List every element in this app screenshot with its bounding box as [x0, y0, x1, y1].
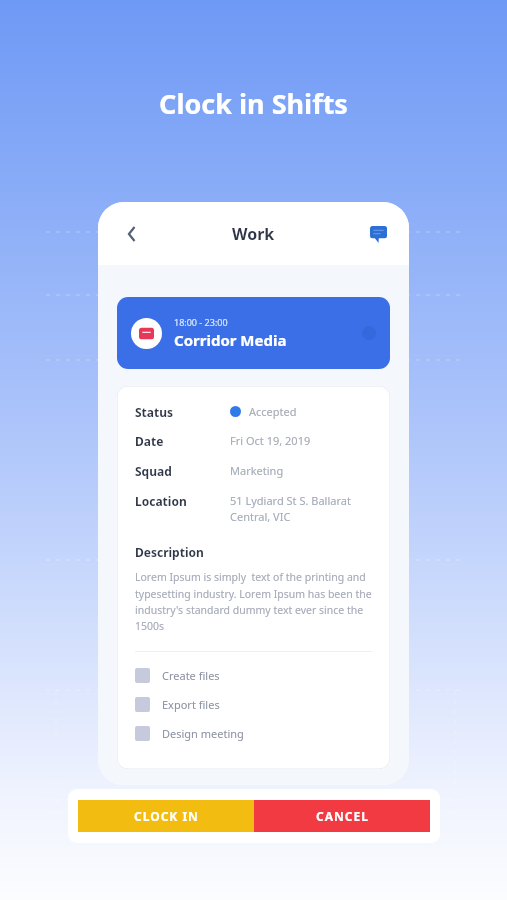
- staticText: Fri Oct 19, 2019: [230, 433, 311, 448]
- staticText: Work: [232, 223, 275, 245]
- button[interactable]: CLOCK IN: [78, 800, 254, 832]
- button[interactable]: 18:00 - 23:00: [117, 297, 390, 369]
- button[interactable]: Design meeting: [135, 726, 372, 741]
- staticText: 18:00 - 23:00: [174, 316, 228, 328]
- button[interactable]: More options: [362, 326, 376, 340]
- staticText: CLOCK IN: [134, 808, 199, 824]
- staticText: Export files: [162, 697, 220, 712]
- staticText: Marketing: [230, 463, 284, 478]
- button[interactable]: Export files: [135, 697, 372, 712]
- staticText: Accepted: [249, 404, 297, 419]
- staticText: Corridor Media: [174, 330, 287, 350]
- staticText: Create files: [162, 668, 220, 683]
- staticText: Lorem Ipsum is simply text of the printi…: [135, 570, 372, 633]
- staticText: Design meeting: [162, 726, 244, 741]
- button[interactable]: CANCEL: [254, 800, 430, 832]
- button[interactable]: Messages: [365, 221, 391, 247]
- button[interactable]: Create files: [135, 668, 372, 683]
- staticText: Clock in Shifts: [0, 85, 507, 122]
- staticText: CANCEL: [316, 808, 369, 824]
- button[interactable]: Back: [118, 220, 146, 248]
- staticText: Description: [135, 544, 204, 560]
- staticText: Status: [135, 404, 230, 420]
- staticText: Squad: [135, 463, 230, 479]
- staticText: Date: [135, 433, 230, 449]
- staticText: Location: [135, 493, 230, 509]
- staticText: 51 Lydiard St S. Ballarat Central, VIC: [230, 493, 351, 524]
